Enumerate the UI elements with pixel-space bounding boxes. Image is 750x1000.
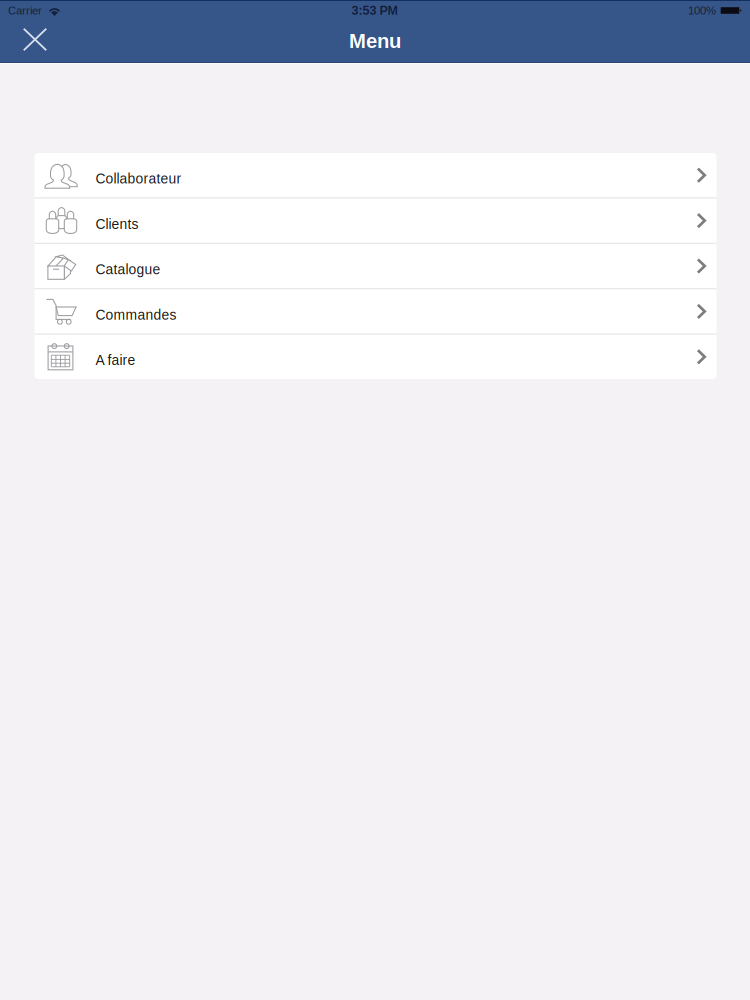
staticText: A faire [95,353,135,368]
staticText: 100% [688,4,716,17]
staticText: Catalogue [95,262,160,277]
button[interactable]: A faire [34,335,716,379]
staticText: Collaborateur [95,171,181,186]
button[interactable]: Clients [34,198,716,243]
button[interactable]: Close [0,19,70,63]
staticText: 3:53 PM [351,3,397,17]
button[interactable]: Catalogue [34,244,716,288]
staticText: Clients [95,216,138,232]
button[interactable]: Commandes [34,289,716,334]
button[interactable]: Collaborateur [34,153,716,197]
staticText: Menu [349,30,401,52]
staticText: Commandes [95,307,176,323]
staticText: Carrier [8,4,42,17]
